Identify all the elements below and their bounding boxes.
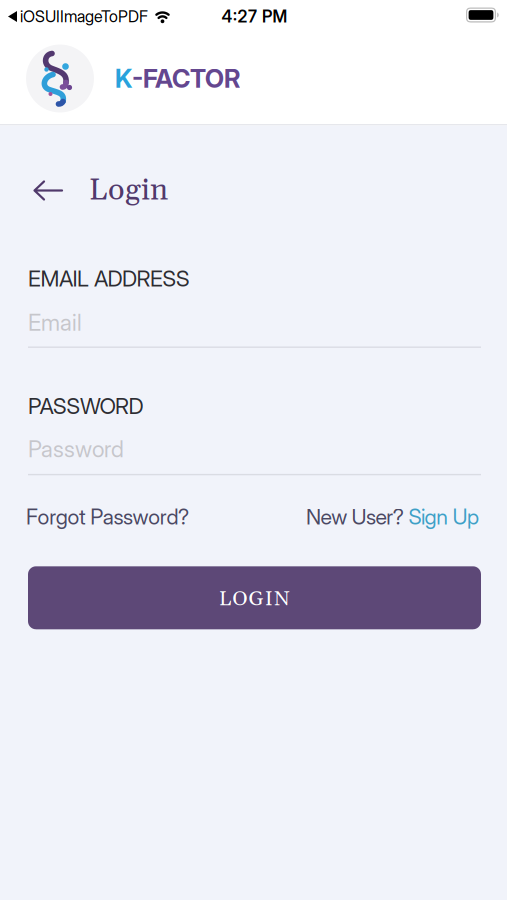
staticText: -FACTOR: [132, 63, 240, 94]
staticText: K: [115, 63, 132, 94]
button[interactable]: Sign Up: [408, 504, 479, 530]
button[interactable]: Back: [33, 179, 63, 201]
button[interactable]: Forgot Password?: [26, 504, 189, 530]
staticText: Password: [28, 435, 124, 463]
staticText: New User?: [306, 504, 408, 530]
staticText: Forgot Password?: [26, 504, 189, 530]
staticText: iOSUIImageToPDF: [20, 7, 148, 26]
staticText: Sign Up: [408, 504, 479, 530]
staticText: 4:27 PM: [221, 6, 287, 27]
staticText: LOGIN: [219, 586, 290, 612]
staticText: PASSWORD: [28, 393, 143, 419]
staticText: Login: [89, 171, 168, 210]
staticText: Email: [28, 309, 82, 336]
button[interactable]: Password: [28, 437, 481, 475]
button[interactable]: Email: [28, 310, 481, 348]
staticText: EMAIL ADDRESS: [28, 265, 190, 292]
button[interactable]: LOGIN: [28, 566, 481, 629]
